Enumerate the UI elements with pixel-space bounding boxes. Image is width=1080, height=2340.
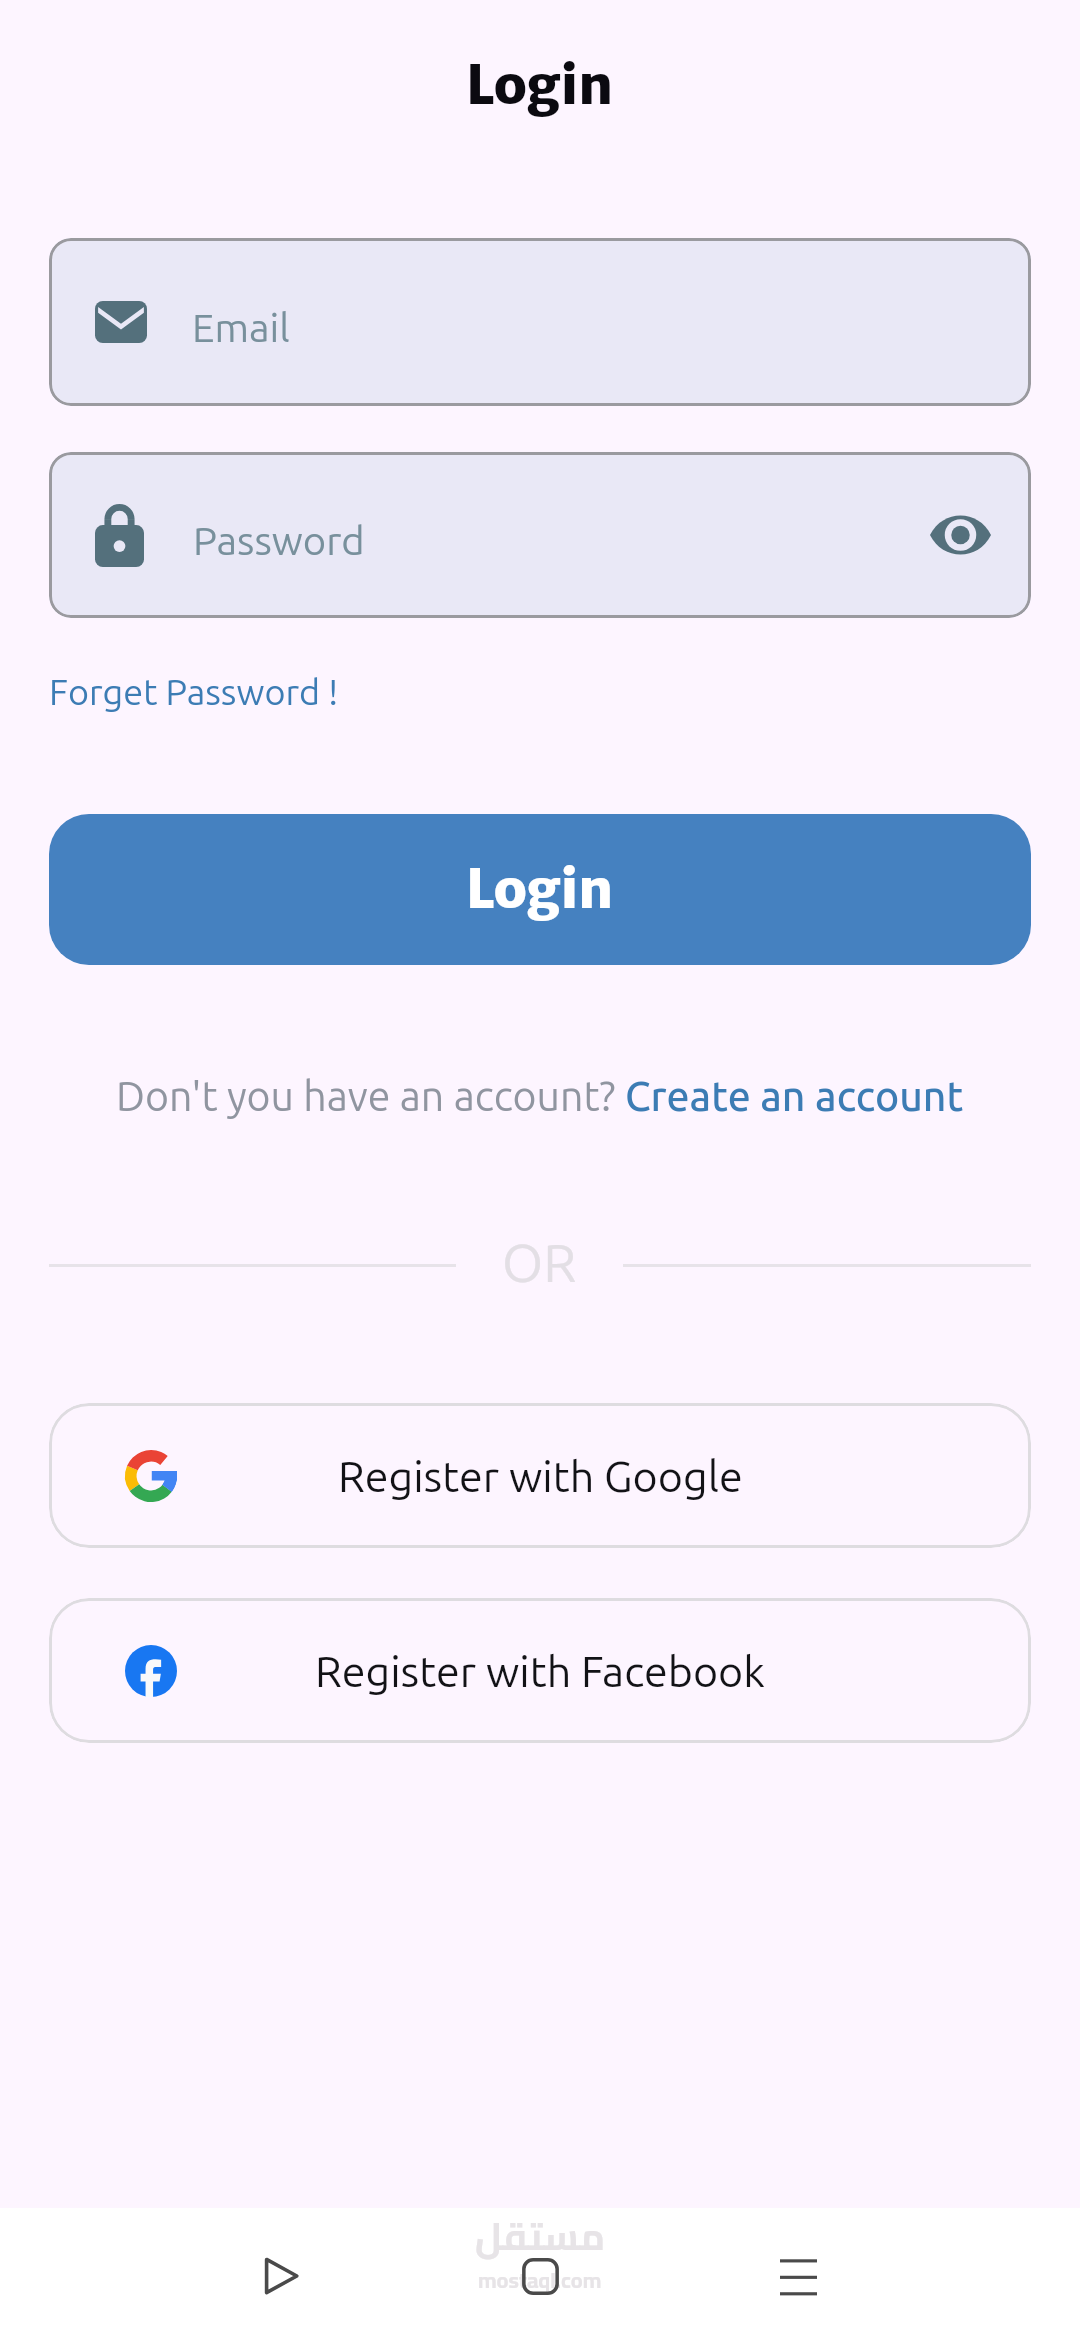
staticText: مستقل — [475, 2200, 606, 2271]
button[interactable]: Create an account — [625, 1073, 964, 1119]
button[interactable]: Forget Password ! — [49, 671, 339, 711]
button[interactable]: Home — [502, 2238, 578, 2314]
staticText: Register with Google — [338, 1452, 743, 1500]
button[interactable]: Back — [243, 2238, 319, 2314]
staticText: Don't you have an account? — [116, 1073, 625, 1119]
button[interactable]: Register with Facebook — [49, 1598, 1031, 1743]
staticText: Email — [192, 305, 290, 350]
button[interactable]: Login — [49, 814, 1031, 965]
staticText: Create an account — [625, 1073, 964, 1119]
staticText: Login — [466, 856, 614, 923]
button[interactable]: Email — [49, 238, 1031, 406]
staticText: Password — [193, 518, 365, 563]
staticText: Forget Password ! — [49, 671, 339, 711]
button[interactable]: Password — [49, 452, 1031, 618]
staticText: Login — [466, 52, 614, 119]
button[interactable]: Register with Google — [49, 1403, 1031, 1548]
staticText: mostaql.com — [478, 2259, 602, 2300]
staticText: OR — [502, 1233, 577, 1292]
staticText: Register with Facebook — [315, 1647, 765, 1695]
button[interactable]: Recent apps — [760, 2238, 836, 2314]
button[interactable]: Show password — [928, 503, 992, 567]
